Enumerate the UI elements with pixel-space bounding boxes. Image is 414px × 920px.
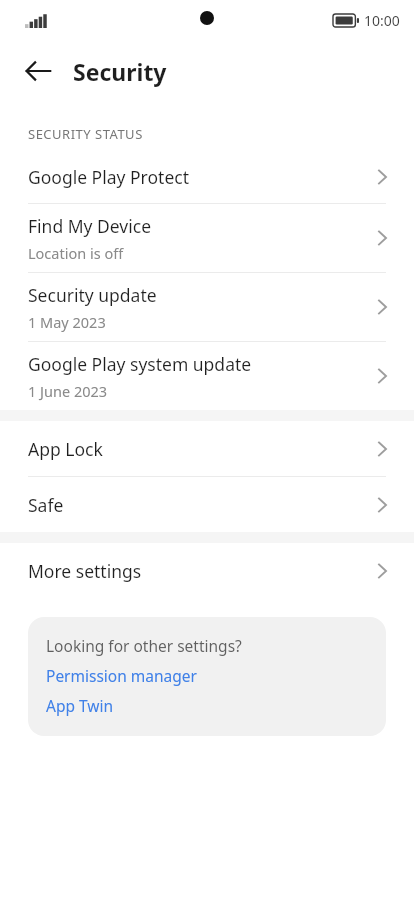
staticText: App Twin <box>46 695 114 716</box>
button[interactable]: App Twin <box>46 695 114 716</box>
button[interactable]: Back <box>14 47 62 95</box>
staticText: More settings <box>28 559 142 583</box>
button[interactable]: App Lock <box>0 421 414 476</box>
staticText: Safe <box>28 493 64 517</box>
staticText: Security update <box>28 283 157 307</box>
staticText: Google Play Protect <box>28 165 189 189</box>
staticText: Looking for other settings? <box>46 635 242 656</box>
staticText: Find My Device <box>28 214 152 238</box>
button[interactable]: Security update <box>0 273 414 341</box>
button[interactable]: Find My Device <box>0 204 414 272</box>
button[interactable]: Permission manager <box>46 665 197 686</box>
staticText: Permission manager <box>46 665 197 686</box>
staticText: Security <box>73 56 167 87</box>
button[interactable]: More settings <box>0 543 414 598</box>
staticText: 1 May 2023 <box>28 312 106 332</box>
staticText: SECURITY STATUS <box>28 125 143 143</box>
button[interactable]: Google Play Protect <box>0 150 414 203</box>
button[interactable]: Google Play system update <box>0 342 414 410</box>
staticText: 1 June 2023 <box>28 381 108 401</box>
staticText: Google Play system update <box>28 352 252 376</box>
staticText: App Lock <box>28 437 103 461</box>
staticText: 10:00 <box>364 11 400 30</box>
staticText: Location is off <box>28 243 124 263</box>
button[interactable]: Safe <box>0 477 414 532</box>
